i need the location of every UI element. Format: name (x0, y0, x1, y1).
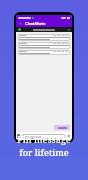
button[interactable]: Back (18, 21, 23, 26)
staticText: Pin message (17, 133, 71, 145)
button[interactable]: Attach (17, 134, 20, 138)
button[interactable] (18, 42, 70, 49)
button[interactable]: ChatMate (25, 21, 46, 27)
button[interactable] (18, 50, 70, 55)
button[interactable] (18, 34, 70, 41)
button[interactable]: Send (67, 134, 71, 138)
button[interactable]: Pinned (16, 27, 72, 32)
staticText: Type message (23, 135, 42, 139)
other: Pinned (18, 28, 21, 31)
button[interactable]: Type message (21, 134, 66, 139)
staticText: for lifetime (19, 146, 69, 158)
staticText: ChatMate (25, 21, 46, 27)
button[interactable] (54, 125, 70, 130)
